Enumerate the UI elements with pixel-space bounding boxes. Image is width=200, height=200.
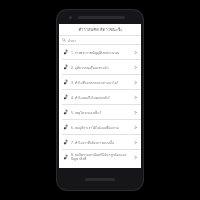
button[interactable]: 7. ทำไมเราถึงต้องการแบบนั้น	[59, 135, 141, 149]
button[interactable]: 5. เหตุใดจะมองเห็น?	[59, 105, 141, 119]
button[interactable]: 4. ทำไมเธอจึงไม่ตอบกลับ?	[59, 90, 141, 104]
button[interactable]: 6. สมมุติว่าเราได้ไปเจอเพื่อนร่วม	[59, 120, 141, 134]
button[interactable]: 2. อุทัยวรรณเรื่องแรกแล้ว	[59, 60, 141, 74]
staticText: 7. ทำไมเราถึงต้องการแบบนั้น	[71, 140, 131, 145]
button[interactable]: 8. สมจิตรายละเอียดที่ได้มาถูกต้องและปัญห…	[59, 150, 141, 164]
staticText: 1. ร่างพระราชบัญญัติงบประมาณ	[71, 50, 131, 55]
button[interactable]: 1. ร่างพระราชบัญญัติงบประมาณ	[59, 45, 141, 59]
button[interactable]: Search	[59, 36, 141, 44]
staticText: ตำราสมคิด สีดาวชนะจ้ะ	[78, 26, 123, 33]
staticText: 2. อุทัยวรรณเรื่องแรกแล้ว	[71, 65, 131, 70]
staticText: 5. เหตุใดจะมองเห็น?	[71, 110, 131, 115]
staticText: ค้นหา	[68, 38, 77, 43]
staticText: 8. สมจิตรายละเอียดที่ได้มาถูกต้องและปัญห…	[71, 152, 131, 162]
staticText: 6. สมมุติว่าเราได้ไปเจอเพื่อนร่วม	[71, 125, 131, 130]
staticText: 3. ทำไมถึงจะตกลงมาตามมาไม่?	[71, 80, 131, 85]
button[interactable]: 3. ทำไมถึงจะตกลงมาตามมาไม่?	[59, 75, 141, 89]
staticText: 4. ทำไมเธอจึงไม่ตอบกลับ?	[71, 95, 131, 100]
other: Search	[62, 38, 66, 42]
